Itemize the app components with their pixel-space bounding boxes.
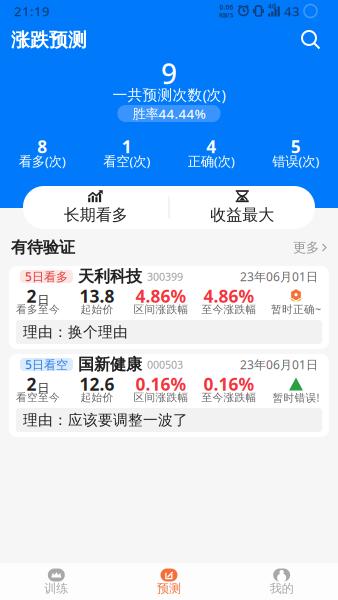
staticText: 看多至今 — [16, 303, 60, 316]
button[interactable]: 5日看空 — [9, 354, 329, 437]
staticText: 4 — [206, 135, 216, 158]
staticText: 训练 — [44, 581, 68, 596]
staticText: 2 — [26, 372, 36, 395]
button[interactable]: 长期看多 — [23, 186, 168, 229]
button[interactable]: 搜索 — [295, 24, 327, 56]
staticText: 一共预测次数(次) — [112, 85, 225, 104]
staticText: 看多(次) — [19, 152, 66, 170]
staticText: 至今涨跌幅 — [201, 391, 256, 404]
staticText: 区间涨跌幅 — [133, 303, 188, 316]
button[interactable]: 5日看多 — [9, 266, 329, 349]
staticText: 5 — [291, 135, 301, 158]
staticText: 43 — [284, 2, 300, 20]
staticText: 起始价 — [80, 391, 113, 404]
staticText: 涨跌预测 — [11, 28, 87, 51]
staticText: 至今涨跌幅 — [201, 303, 256, 316]
staticText: 胜率44.44% — [132, 105, 205, 122]
staticText: 长期看多 — [64, 205, 128, 225]
staticText: 4.86% — [203, 284, 254, 307]
staticText: 理由：应该要调整一波了 — [23, 411, 188, 429]
staticText: 错误(次) — [272, 152, 319, 170]
button[interactable]: 收益最大 — [169, 186, 315, 229]
staticText: 有待验证 — [11, 238, 75, 257]
staticText: 4.86% — [135, 284, 186, 307]
staticText: 23年06月01日 — [240, 268, 318, 284]
staticText: 我的 — [270, 581, 294, 596]
staticText: 区间涨跌幅 — [133, 391, 188, 404]
staticText: 日 — [37, 293, 49, 307]
button[interactable]: 预测 — [113, 563, 225, 599]
staticText: 4G — [268, 2, 277, 10]
staticText: 收益最大 — [210, 205, 274, 225]
staticText: 23年06月01日 — [240, 356, 318, 372]
staticText: 21:19 — [14, 2, 50, 20]
staticText: 暂时正确~ — [271, 302, 321, 316]
staticText: KB/S — [219, 10, 234, 19]
staticText: 0.16% — [203, 372, 254, 395]
staticText: 5日看空 — [25, 356, 68, 372]
staticText: 正确(次) — [188, 152, 235, 170]
staticText: 起始价 — [80, 303, 113, 316]
staticText: 国新健康 — [78, 355, 142, 374]
button[interactable]: 更多 — [293, 233, 327, 262]
staticText: 暂时错误! — [272, 390, 319, 405]
staticText: 日 — [37, 381, 49, 395]
button[interactable]: 训练 — [0, 563, 113, 599]
staticText: 12.6 — [79, 372, 114, 395]
staticText: 0.06 — [219, 3, 233, 11]
staticText: 000503 — [147, 357, 183, 372]
staticText: 预测 — [157, 581, 181, 596]
staticText: 看空至今 — [16, 391, 60, 404]
staticText: 2 — [26, 284, 36, 307]
staticText: 9 — [161, 55, 177, 92]
button[interactable]: 我的 — [225, 563, 338, 599]
staticText: 5日看多 — [25, 268, 68, 284]
staticText: 1 — [122, 135, 132, 158]
staticText: 8 — [37, 135, 47, 158]
staticText: 天利科技 — [78, 267, 142, 286]
staticText: 13.8 — [79, 284, 114, 307]
staticText: 0.16% — [135, 372, 186, 395]
staticText: 更多 — [293, 239, 319, 256]
staticText: 300399 — [147, 269, 183, 284]
staticText: 理由：换个理由 — [23, 323, 128, 341]
staticText: 看空(次) — [103, 152, 150, 170]
